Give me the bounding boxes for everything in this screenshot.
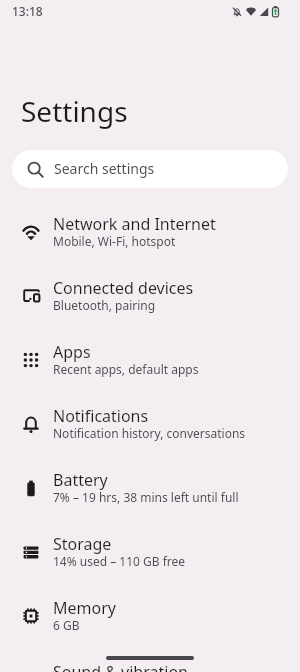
staticText: Sound & vibration (53, 661, 188, 672)
staticText: Bluetooth, pairing (53, 297, 156, 313)
staticText: Connected devices (53, 277, 194, 299)
staticText: Search settings (54, 159, 155, 178)
staticText: Memory (53, 597, 116, 619)
button[interactable]: Storage (0, 520, 300, 584)
staticText: Network and Internet (53, 213, 216, 235)
staticText: Battery (53, 469, 108, 491)
staticText: Mobile, Wi-Fi, hotspot (53, 233, 176, 249)
button[interactable]: Battery (0, 456, 300, 520)
button[interactable]: Sound & vibration (0, 648, 300, 672)
staticText: 6 GB (53, 617, 80, 633)
button[interactable]: Connected devices (0, 264, 300, 328)
staticText: Notification history, conversations (53, 425, 246, 441)
button[interactable]: Notifications (0, 392, 300, 456)
staticText: Recent apps, default apps (53, 361, 199, 377)
button[interactable]: Apps (0, 328, 300, 392)
button[interactable]: Search settings (12, 150, 288, 188)
button[interactable]: Network and Internet (0, 200, 300, 264)
staticText: Notifications (53, 405, 149, 427)
staticText: 7% – 19 hrs, 38 mins left until full (53, 489, 239, 505)
staticText: 13:18 (12, 3, 43, 19)
staticText: 14% used – 110 GB free (53, 553, 186, 569)
staticText: Settings (21, 92, 128, 130)
staticText: Storage (53, 533, 112, 555)
staticText: Apps (53, 341, 91, 363)
button[interactable]: Memory (0, 584, 300, 648)
